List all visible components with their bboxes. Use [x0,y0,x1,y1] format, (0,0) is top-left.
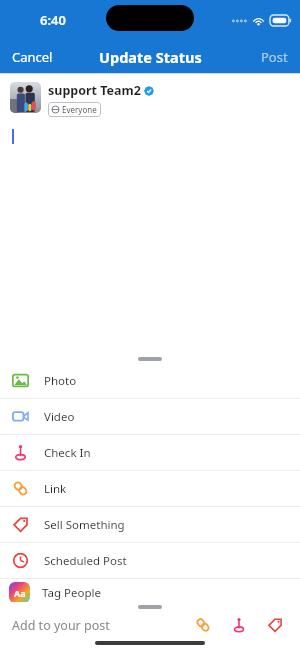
staticText: Post [261,48,288,66]
staticText: Photo [44,373,77,389]
button[interactable]: Link [190,612,216,638]
button[interactable]: Post [249,42,300,72]
button[interactable]: Sell Something [262,612,288,638]
button[interactable]: Photo [0,363,300,399]
staticText: Link [44,481,67,497]
staticText: Tag People [42,585,101,601]
button[interactable]: Check In [0,435,300,471]
staticText: 6:40 [40,11,66,29]
button[interactable]: Profile photo [10,82,41,113]
staticText: Video [44,409,75,425]
button[interactable]: Video [0,399,300,435]
staticText: support Team2 [48,82,141,99]
staticText: Check In [44,445,91,461]
staticText: Sell Something [44,517,125,533]
staticText: Aa [14,587,26,599]
button[interactable]: Cancel [0,42,65,72]
button[interactable]: Add to your post [12,617,190,634]
staticText: Everyone [62,104,97,115]
button[interactable]: Scheduled Post [0,543,300,579]
staticText: Scheduled Post [44,553,127,569]
button[interactable]: Aa [0,579,300,606]
staticText: Update Status [99,47,202,67]
button[interactable]: Link [0,471,300,507]
button[interactable]: Sell Something [0,507,300,543]
button[interactable]: Check In [226,612,252,638]
staticText: Cancel [12,48,53,66]
button[interactable]: Everyone [48,102,101,117]
